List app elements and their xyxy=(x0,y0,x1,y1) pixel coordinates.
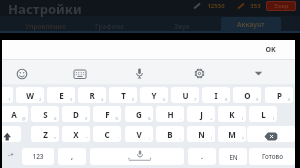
staticText: K xyxy=(229,109,235,120)
staticText: 9 xyxy=(256,97,259,102)
staticText: ; xyxy=(180,136,182,141)
button[interactable]: U xyxy=(171,87,199,103)
staticText: Закр xyxy=(274,2,289,10)
staticText: * xyxy=(54,136,57,141)
button[interactable]: Q xyxy=(0,87,13,103)
staticText: L xyxy=(261,109,266,120)
staticText: & xyxy=(148,116,151,121)
button[interactable] xyxy=(90,148,184,165)
staticText: Q xyxy=(0,90,3,101)
button[interactable]: R xyxy=(78,87,106,103)
button[interactable]: T xyxy=(109,87,137,103)
staticText: 0 xyxy=(288,97,291,102)
button[interactable] xyxy=(192,2,202,10)
button[interactable]: Аккаунт xyxy=(221,17,281,32)
button[interactable]: B xyxy=(156,126,184,142)
button[interactable] xyxy=(15,67,29,81)
staticText: N xyxy=(198,129,205,140)
button[interactable]: O xyxy=(233,87,261,103)
button[interactable]: Звук xyxy=(122,18,242,34)
button[interactable]: J xyxy=(187,106,215,122)
staticText: O xyxy=(244,90,251,101)
staticText: B xyxy=(167,129,173,140)
button[interactable]: D xyxy=(62,106,90,122)
button[interactable]: N xyxy=(187,126,215,142)
staticText: E xyxy=(59,90,64,101)
staticText: J xyxy=(200,109,203,120)
staticText: 6 xyxy=(163,97,166,102)
staticText: Управление xyxy=(25,22,66,31)
staticText: V xyxy=(136,129,142,140)
staticText: + xyxy=(210,116,213,121)
button[interactable]: P xyxy=(265,87,293,103)
staticText: " xyxy=(86,136,88,141)
staticText: OK xyxy=(265,45,276,55)
button[interactable]: E xyxy=(47,87,75,103)
staticText: M xyxy=(228,129,236,140)
staticText: : xyxy=(149,136,151,141)
staticText: U xyxy=(182,90,189,101)
button[interactable]: I xyxy=(202,87,230,103)
button[interactable]: X xyxy=(62,126,90,142)
staticText: ! xyxy=(211,136,213,141)
staticText: % xyxy=(115,116,119,121)
staticText: . xyxy=(201,152,203,162)
staticText: ' xyxy=(118,136,119,141)
staticText: Графика xyxy=(95,22,124,31)
button[interactable] xyxy=(0,126,21,142)
button[interactable]: G xyxy=(125,106,153,122)
staticText: I xyxy=(214,90,218,101)
staticText: Настройки xyxy=(8,0,82,17)
button[interactable]: Z xyxy=(31,126,59,142)
staticText: ) xyxy=(273,116,275,121)
button[interactable] xyxy=(133,67,146,81)
staticText: A xyxy=(11,109,17,120)
staticText: 353 xyxy=(250,2,261,10)
button[interactable]: Y xyxy=(140,87,168,103)
button[interactable]: W xyxy=(16,87,44,103)
staticText: X xyxy=(73,129,79,140)
button[interactable]: M xyxy=(218,126,246,142)
button[interactable] xyxy=(193,67,206,80)
staticText: R xyxy=(89,90,95,101)
staticText: 123 xyxy=(32,152,44,161)
staticText: H xyxy=(167,109,174,120)
staticText: 5 xyxy=(132,97,135,102)
button[interactable]: , xyxy=(58,148,86,165)
button[interactable] xyxy=(252,67,265,80)
button[interactable]: K xyxy=(218,106,246,122)
staticText: ? xyxy=(242,136,244,141)
button[interactable] xyxy=(73,67,87,81)
button[interactable]: V xyxy=(125,126,153,142)
staticText: W xyxy=(26,90,34,101)
button[interactable]: S xyxy=(31,106,59,122)
button[interactable] xyxy=(236,2,246,10)
staticText: , xyxy=(71,152,73,162)
button[interactable]: Графика xyxy=(49,18,169,34)
button[interactable]: 123 xyxy=(22,148,54,165)
button[interactable]: A xyxy=(0,106,28,122)
staticText: D xyxy=(73,109,79,120)
staticText: Звук xyxy=(174,22,190,31)
staticText: 7 xyxy=(194,97,197,102)
button[interactable]: L xyxy=(249,106,277,122)
button[interactable]: H xyxy=(156,106,184,122)
button[interactable]: EN xyxy=(219,148,247,165)
button[interactable]: OK xyxy=(255,44,285,56)
button[interactable] xyxy=(247,126,295,142)
button[interactable]: Готово xyxy=(249,148,295,165)
staticText: F xyxy=(105,109,110,120)
button[interactable]: ~* xyxy=(0,148,20,160)
button[interactable]: Закр xyxy=(266,1,296,11)
staticText: P xyxy=(277,90,282,101)
staticText: Готово xyxy=(262,152,283,161)
button[interactable]: Управление xyxy=(0,18,105,34)
button[interactable]: . xyxy=(188,148,216,165)
staticText: 3 xyxy=(70,97,73,102)
button[interactable]: F xyxy=(93,106,121,122)
staticText: T xyxy=(121,90,126,101)
staticText: ( xyxy=(242,116,244,121)
staticText: 12550 xyxy=(207,2,225,10)
button[interactable]: C xyxy=(93,126,121,142)
staticText: 8 xyxy=(225,97,228,102)
